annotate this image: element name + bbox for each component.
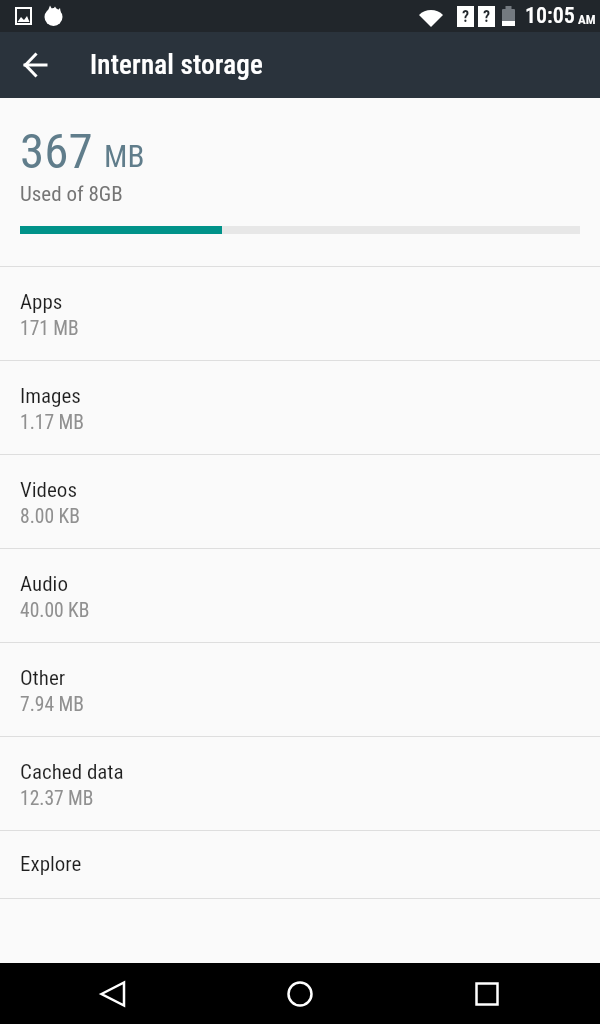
staticText: Other (20, 666, 66, 691)
button[interactable]: Audio (0, 549, 600, 642)
button[interactable]: Images (0, 361, 600, 454)
staticText: Apps (20, 290, 63, 315)
staticText: AM (575, 12, 596, 27)
staticText: 7.94 MB (20, 693, 84, 716)
button[interactable] (12, 41, 60, 89)
button[interactable] (287, 981, 313, 1007)
staticText: MB (104, 138, 145, 174)
staticText: Cached data (20, 760, 124, 785)
staticText: 12.37 MB (20, 787, 94, 810)
button[interactable] (474, 981, 500, 1007)
staticText: 40.00 KB (20, 599, 90, 622)
staticText: Images (20, 384, 81, 409)
staticText: 10:05 (525, 3, 575, 29)
staticText: Used of 8GB (20, 182, 123, 207)
staticText: 171 MB (20, 317, 79, 340)
button[interactable]: Videos (0, 455, 600, 548)
staticText: ? (462, 7, 470, 26)
staticText: Videos (20, 478, 77, 503)
staticText: Audio (20, 572, 68, 597)
staticText: Internal storage (90, 49, 263, 81)
button[interactable] (100, 981, 126, 1007)
staticText: ? (483, 7, 491, 26)
staticText: 1.17 MB (20, 411, 84, 434)
button[interactable]: Other (0, 643, 600, 736)
button[interactable]: Explore (0, 831, 600, 898)
button[interactable]: Apps (0, 267, 600, 360)
staticText: 8.00 KB (20, 505, 80, 528)
button[interactable]: Cached data (0, 737, 600, 830)
staticText: Explore (20, 852, 82, 877)
staticText: 367 (20, 123, 93, 180)
